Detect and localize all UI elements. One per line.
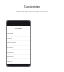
staticText: Alerts bbox=[7, 37, 13, 40]
staticText: Settings bbox=[6, 27, 31, 30]
staticText: Theme bbox=[7, 32, 14, 35]
button[interactable]: About bbox=[6, 59, 31, 64]
staticText: Customize bbox=[0, 5, 64, 9]
staticText: Make the app look and feel like yours bbox=[0, 10, 64, 13]
staticText: Privacy bbox=[7, 46, 14, 49]
button[interactable]: Display bbox=[6, 54, 31, 59]
button[interactable]: Sounds bbox=[6, 50, 31, 55]
staticText: Language bbox=[7, 41, 16, 44]
button[interactable]: Language bbox=[6, 40, 31, 45]
staticText: Display bbox=[7, 55, 14, 58]
button[interactable]: Theme bbox=[6, 31, 31, 36]
staticText: Sounds bbox=[7, 51, 14, 54]
staticText: About bbox=[7, 60, 13, 63]
button[interactable]: Privacy bbox=[6, 45, 31, 50]
button[interactable]: Alerts bbox=[6, 36, 31, 41]
